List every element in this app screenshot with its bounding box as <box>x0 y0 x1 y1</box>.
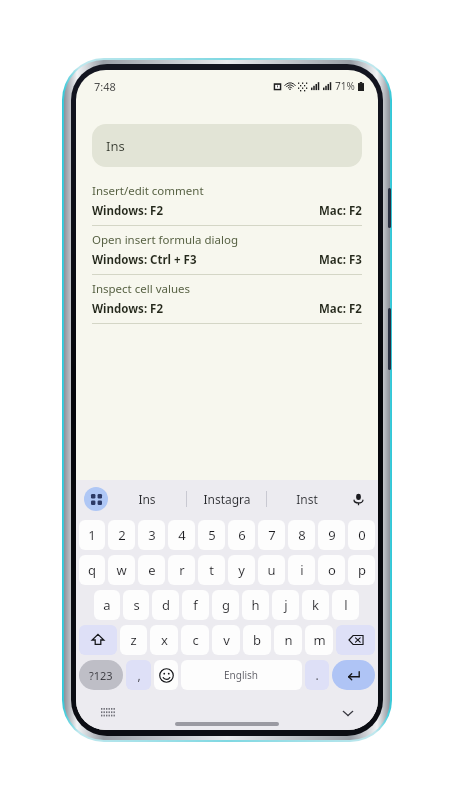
button[interactable]: 1 <box>79 520 105 550</box>
staticText: 4 <box>178 526 186 544</box>
button[interactable]: n <box>274 625 302 655</box>
button[interactable]: p <box>348 555 375 585</box>
staticText: Open insert formula dialog <box>92 232 239 248</box>
button[interactable]: w <box>108 555 135 585</box>
staticText: o <box>328 561 336 579</box>
button[interactable]: Enter <box>332 660 375 690</box>
staticText: h <box>251 596 260 614</box>
staticText: c <box>192 631 199 649</box>
button[interactable]: b <box>243 625 271 655</box>
button[interactable]: i <box>288 555 315 585</box>
button[interactable]: e <box>138 555 165 585</box>
staticText: j <box>284 596 288 614</box>
button[interactable]: , <box>126 660 151 690</box>
staticText: Ins <box>138 491 156 507</box>
staticText: Windows: F2 <box>92 203 163 219</box>
button[interactable]: 3 <box>138 520 165 550</box>
button[interactable]: z <box>120 625 147 655</box>
button[interactable]: Switch keyboard <box>98 703 118 723</box>
staticText: u <box>267 561 276 579</box>
button[interactable]: v <box>212 625 240 655</box>
staticText: q <box>88 561 96 579</box>
staticText: Mac: F2 <box>319 203 362 219</box>
staticText: 5 <box>208 526 216 544</box>
button[interactable]: Keyboard options <box>84 487 108 511</box>
staticText: s <box>133 596 140 614</box>
staticText: , <box>137 667 141 683</box>
button[interactable]: d <box>152 590 179 620</box>
button[interactable]: . <box>305 660 329 690</box>
staticText: Insert/edit comment <box>92 183 204 199</box>
button[interactable]: 8 <box>288 520 315 550</box>
staticText: z <box>130 631 137 649</box>
button[interactable]: ?123 <box>79 660 123 690</box>
staticText: p <box>358 561 366 579</box>
button[interactable]: Inspect cell values <box>92 275 362 323</box>
staticText: v <box>223 631 230 649</box>
staticText: 7:48 <box>94 79 116 94</box>
button[interactable]: 7 <box>258 520 285 550</box>
button[interactable]: q <box>79 555 105 585</box>
staticText: Mac: F3 <box>319 252 362 268</box>
button[interactable]: Shift <box>79 625 117 655</box>
button[interactable]: r <box>168 555 195 585</box>
button[interactable]: English <box>181 660 302 690</box>
staticText: Instagra <box>203 491 251 507</box>
button[interactable]: 6 <box>228 520 255 550</box>
button[interactable]: Instagra <box>187 480 266 518</box>
button[interactable]: Open insert formula dialog <box>92 226 362 274</box>
button[interactable]: f <box>182 590 209 620</box>
staticText: r <box>179 561 185 579</box>
staticText: Windows: Ctrl + F3 <box>92 252 197 268</box>
staticText: d <box>162 596 170 614</box>
button[interactable]: x <box>150 625 178 655</box>
staticText: i <box>300 561 304 579</box>
staticText: k <box>312 596 319 614</box>
button[interactable]: 5 <box>198 520 225 550</box>
staticText: English <box>224 668 259 682</box>
button[interactable]: o <box>318 555 345 585</box>
staticText: Mac: F2 <box>319 301 362 317</box>
staticText: 3 <box>148 526 156 544</box>
button[interactable]: Backspace <box>336 625 375 655</box>
staticText: w <box>116 561 127 579</box>
button[interactable]: g <box>212 590 239 620</box>
button[interactable]: Voice input <box>346 487 370 511</box>
button[interactable]: Emoji <box>154 660 178 690</box>
button[interactable]: j <box>272 590 299 620</box>
button[interactable]: y <box>228 555 255 585</box>
button[interactable]: h <box>242 590 269 620</box>
staticText: Windows: F2 <box>92 301 163 317</box>
button[interactable]: Inst <box>267 480 346 518</box>
button[interactable]: l <box>332 590 359 620</box>
button[interactable]: s <box>123 590 149 620</box>
staticText: 2 <box>118 526 126 544</box>
staticText: ?123 <box>89 668 113 683</box>
button[interactable]: 9 <box>318 520 345 550</box>
staticText: 71% <box>335 79 355 93</box>
staticText: b <box>253 631 261 649</box>
staticText: 0 <box>358 526 366 544</box>
button[interactable]: 0 <box>348 520 375 550</box>
button[interactable]: u <box>258 555 285 585</box>
button[interactable]: c <box>181 625 209 655</box>
button[interactable]: 4 <box>168 520 195 550</box>
staticText: Ins <box>106 137 125 155</box>
staticText: 7 <box>268 526 276 544</box>
staticText: a <box>103 596 111 614</box>
button[interactable]: k <box>302 590 329 620</box>
staticText: l <box>344 596 348 614</box>
staticText: m <box>313 631 326 649</box>
button[interactable]: Ins <box>92 124 362 167</box>
staticText: 8 <box>298 526 306 544</box>
button[interactable]: Ins <box>108 480 186 518</box>
button[interactable]: t <box>198 555 225 585</box>
button[interactable]: m <box>305 625 333 655</box>
button[interactable]: 2 <box>108 520 135 550</box>
staticText: e <box>148 561 156 579</box>
button[interactable]: Insert/edit comment <box>92 177 362 225</box>
button[interactable]: a <box>94 590 120 620</box>
staticText: g <box>222 596 230 614</box>
staticText: f <box>193 596 198 614</box>
button[interactable]: Hide keyboard <box>338 703 358 723</box>
